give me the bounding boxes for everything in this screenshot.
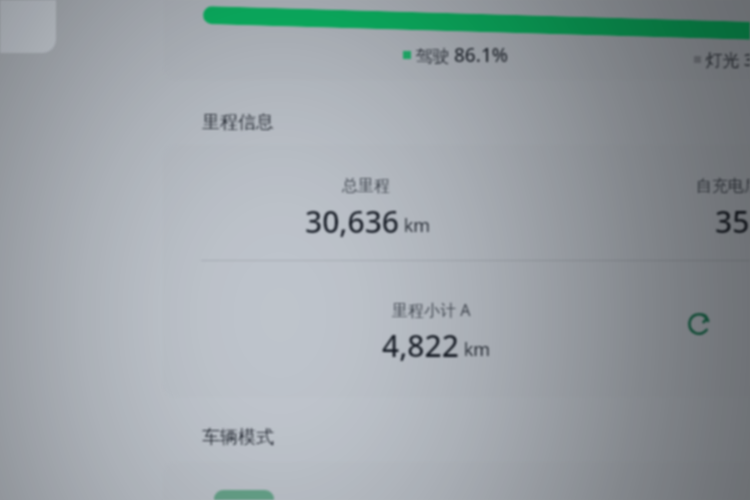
staticText: 车辆模式 <box>202 426 274 449</box>
staticText: 总里程 <box>342 176 390 196</box>
staticText: 30,636 <box>305 201 399 242</box>
staticText: 自充电后 <box>696 176 750 196</box>
staticText: 里程小计 A <box>392 299 471 321</box>
staticText: 驾驶 <box>411 44 454 67</box>
button[interactable]: 灯光 3 <box>694 48 750 71</box>
staticText: 86.1% <box>454 42 508 68</box>
button[interactable]: 驾驶 <box>403 42 508 68</box>
staticText: 35 <box>715 201 750 242</box>
staticText: km <box>399 213 431 238</box>
staticText: 灯光 3 <box>701 48 750 71</box>
staticText: 4,822 <box>382 325 459 366</box>
button[interactable]: Reset trip meter <box>677 302 721 346</box>
staticText: km <box>459 337 491 362</box>
staticText: 里程信息 <box>202 111 274 134</box>
